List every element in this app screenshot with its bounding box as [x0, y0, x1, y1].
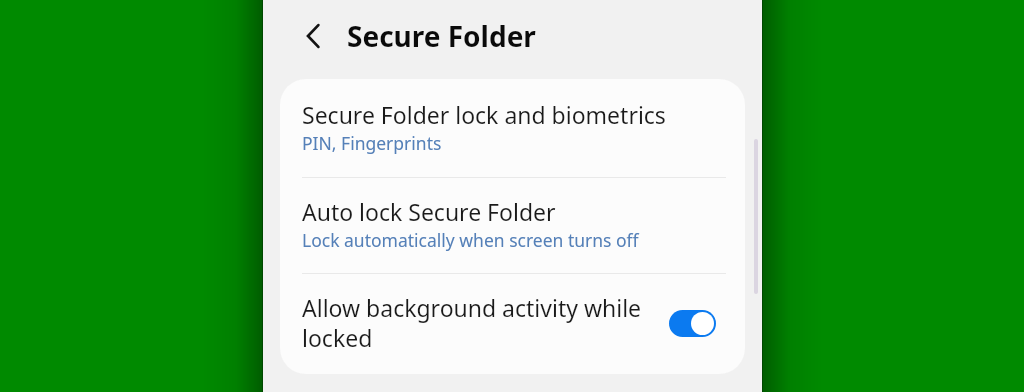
button[interactable]: Navigate back: [290, 14, 334, 58]
button[interactable]: Secure Folder lock and biometrics: [280, 79, 745, 177]
staticText: Allow background activity while locked: [302, 292, 647, 354]
staticText: Lock automatically when screen turns off: [302, 228, 639, 252]
staticText: PIN, Fingerprints: [302, 131, 442, 155]
button[interactable]: Auto lock Secure Folder: [280, 178, 745, 273]
button[interactable]: Allow background activity while locked, …: [669, 310, 716, 337]
staticText: Secure Folder lock and biometrics: [302, 99, 666, 130]
button[interactable]: Allow background activity while locked: [280, 274, 745, 374]
staticText: Secure Folder: [347, 17, 536, 55]
staticText: Auto lock Secure Folder: [302, 196, 556, 227]
